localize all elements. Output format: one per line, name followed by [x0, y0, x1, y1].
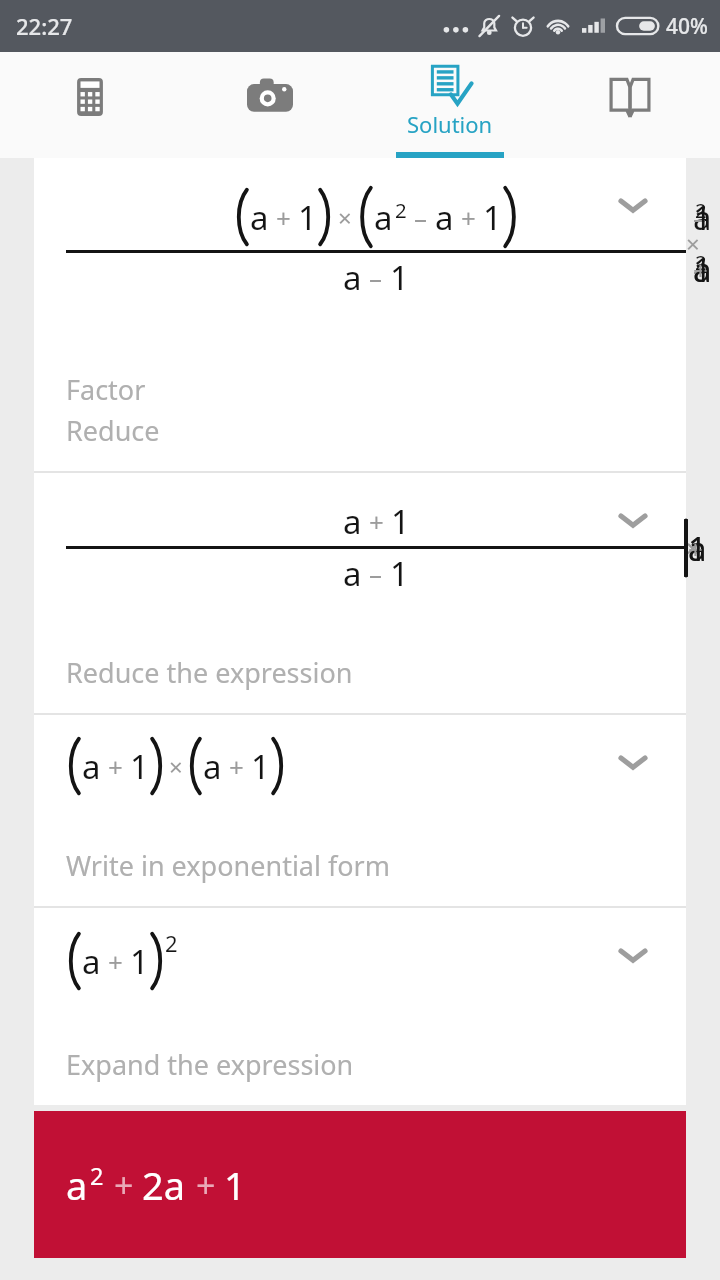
- staticText: ×: [338, 201, 352, 234]
- button[interactable]: Calculator: [0, 52, 180, 158]
- staticText: a: [374, 195, 393, 240]
- button[interactable]: a: [34, 715, 686, 906]
- staticText: a: [82, 939, 101, 984]
- staticText: 1: [483, 195, 502, 240]
- staticText: 1: [298, 195, 317, 240]
- button[interactable]: Dictionary: [540, 52, 720, 158]
- button[interactable]: a: [34, 908, 686, 1105]
- button[interactable]: Expand step: [610, 182, 656, 228]
- staticText: a: [203, 744, 222, 789]
- staticText: +: [108, 944, 123, 979]
- staticText: Factor: [66, 371, 146, 408]
- staticText: a: [435, 195, 454, 240]
- staticText: Reduce the expression: [66, 654, 353, 691]
- staticText: 1: [390, 255, 409, 300]
- staticText: +: [461, 200, 476, 235]
- staticText: a: [250, 195, 269, 240]
- staticText: 1: [390, 551, 409, 596]
- staticText: a: [82, 744, 101, 789]
- staticText: 2: [90, 1160, 104, 1192]
- staticText: +: [369, 504, 384, 539]
- button[interactable]: a: [34, 473, 686, 713]
- staticText: ×: [169, 750, 183, 783]
- staticText: a: [343, 551, 362, 596]
- staticText: 1: [130, 744, 149, 789]
- staticText: a: [343, 499, 362, 544]
- staticText: –: [414, 200, 428, 235]
- button[interactable]: Solution: [360, 52, 540, 158]
- staticText: a: [343, 255, 362, 300]
- staticText: –: [369, 556, 383, 591]
- staticText: 2a: [142, 1159, 186, 1211]
- button[interactable]: a: [34, 158, 686, 471]
- button[interactable]: Camera: [180, 52, 360, 158]
- staticText: +: [108, 749, 123, 784]
- staticText: 22:27: [16, 11, 73, 41]
- button[interactable]: Expand step: [610, 739, 656, 785]
- staticText: 1: [224, 1159, 246, 1211]
- staticText: 2: [165, 928, 178, 958]
- staticText: 1: [251, 744, 270, 789]
- button[interactable]: a: [34, 1111, 686, 1258]
- staticText: 2: [395, 196, 407, 224]
- staticText: +: [196, 1162, 216, 1208]
- staticText: Expand the expression: [66, 1046, 354, 1083]
- button[interactable]: Expand step: [610, 932, 656, 978]
- staticText: a: [66, 1159, 88, 1211]
- button[interactable]: Expand step: [610, 497, 656, 543]
- staticText: +: [276, 200, 291, 235]
- staticText: Solution: [407, 109, 493, 139]
- staticText: Write in exponential form: [66, 847, 390, 884]
- staticText: 1: [130, 939, 149, 984]
- staticText: 40%: [666, 12, 708, 41]
- staticText: 1: [391, 499, 410, 544]
- staticText: Reduce: [66, 412, 160, 449]
- staticText: –: [369, 260, 383, 295]
- staticText: +: [229, 749, 244, 784]
- staticText: +: [114, 1162, 134, 1208]
